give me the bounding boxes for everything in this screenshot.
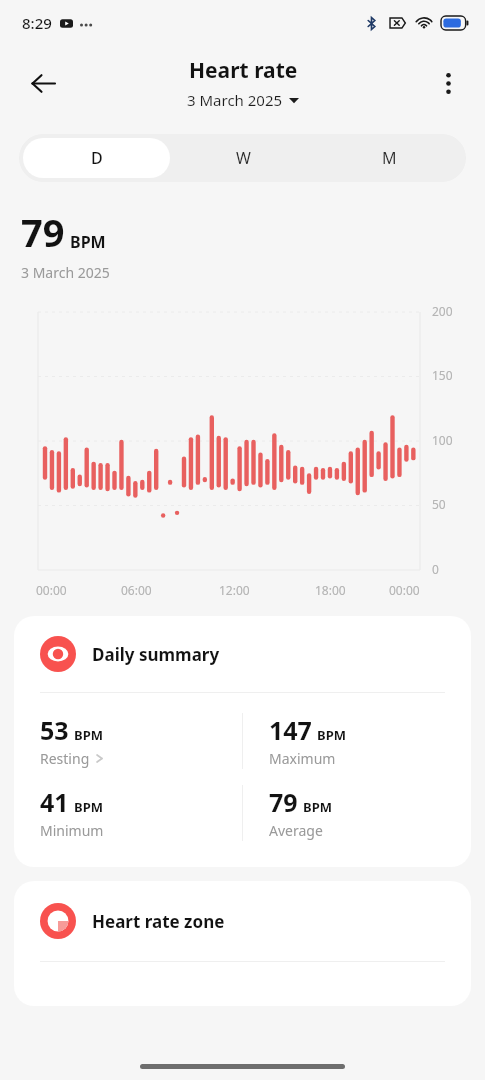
staticText: Minimum bbox=[40, 821, 104, 840]
staticText: BPM bbox=[317, 726, 346, 744]
staticText: 00:00 bbox=[389, 582, 420, 598]
staticText: Maximum bbox=[269, 749, 336, 768]
staticText: 50 bbox=[432, 496, 446, 512]
staticText: W bbox=[236, 147, 251, 169]
button[interactable]: Daily summary bbox=[14, 616, 471, 867]
staticText: 18:00 bbox=[315, 582, 346, 598]
staticText: 12:00 bbox=[219, 582, 250, 598]
staticText: 41 bbox=[40, 785, 69, 819]
staticText: 150 bbox=[432, 367, 453, 383]
staticText: 00:00 bbox=[36, 582, 67, 598]
staticText: BPM bbox=[70, 231, 106, 253]
staticText: Resting bbox=[40, 749, 90, 768]
button[interactable]: More options bbox=[427, 62, 469, 104]
staticText: BPM bbox=[303, 798, 332, 816]
staticText: Daily summary bbox=[92, 643, 220, 666]
staticText: 8:29 bbox=[22, 13, 52, 33]
staticText: 79 bbox=[21, 206, 65, 258]
staticText: Heart rate bbox=[189, 56, 298, 85]
staticText: 100 bbox=[432, 432, 453, 448]
staticText: 3 March 2025 bbox=[187, 90, 283, 110]
staticText: 200 bbox=[432, 303, 453, 319]
staticText: 53 bbox=[40, 713, 69, 747]
staticText: D bbox=[91, 147, 103, 169]
staticText: 3 March 2025 bbox=[21, 263, 110, 282]
staticText: Heart rate zone bbox=[92, 910, 225, 933]
staticText: 147 bbox=[269, 713, 312, 747]
button[interactable]: Back bbox=[20, 60, 66, 106]
staticText: 0 bbox=[432, 561, 439, 577]
button[interactable]: D bbox=[23, 138, 170, 178]
staticText: M bbox=[382, 147, 397, 169]
button[interactable]: 3 March 2025 bbox=[183, 89, 303, 111]
staticText: 79 bbox=[269, 785, 298, 819]
staticText: BPM bbox=[74, 798, 103, 816]
button[interactable]: Heart rate zone bbox=[14, 881, 471, 1006]
button[interactable]: M bbox=[316, 138, 462, 178]
staticText: BPM bbox=[74, 726, 103, 744]
staticText: 06:00 bbox=[121, 582, 152, 598]
staticText: Average bbox=[269, 821, 323, 840]
button[interactable]: W bbox=[170, 138, 316, 178]
